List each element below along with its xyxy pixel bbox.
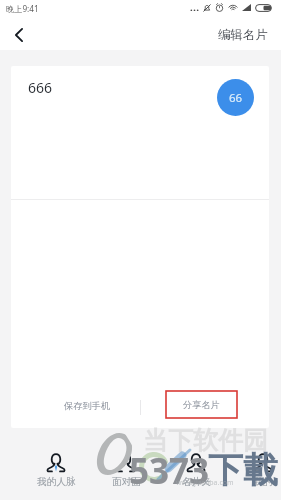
staticText: www.jiasuba.com (176, 478, 234, 488)
staticText: 下載 (208, 448, 278, 492)
staticText: 我的 (253, 476, 273, 488)
staticText: 我的人脉 (37, 476, 76, 488)
staticText: 面对面 (112, 476, 141, 488)
staticText: 5373 (129, 447, 210, 495)
button[interactable]: 分享名片 (166, 391, 237, 418)
button[interactable]: 我的人脉 (21, 447, 91, 492)
staticText: 当下软件园 (143, 425, 268, 456)
staticText: 666 (28, 78, 53, 97)
staticText: 66 (229, 90, 243, 106)
staticText: 晚上9:41 (6, 3, 39, 14)
staticText: 保存到手机 (64, 400, 110, 412)
button[interactable]: 保存到手机 (51, 393, 123, 419)
staticText: 编辑名片 (218, 27, 268, 43)
button[interactable]: 名片夹 (161, 447, 231, 492)
staticText: 分享名片 (183, 399, 220, 411)
button[interactable]: 编辑名片 (210, 20, 276, 50)
button[interactable]: Back (0, 20, 40, 50)
staticText: 名片夹 (182, 476, 211, 488)
button[interactable]: 面对面 (91, 447, 161, 492)
button[interactable]: Change avatar (217, 79, 254, 116)
button[interactable]: 我的 (228, 447, 281, 492)
